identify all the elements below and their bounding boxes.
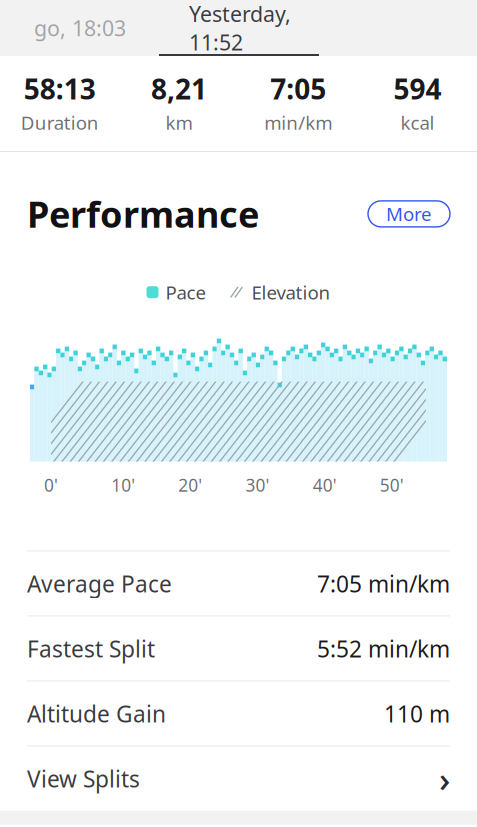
staticText: › [439,756,450,802]
button[interactable]: View Splits [0,747,477,811]
staticText: Duration [21,110,99,135]
staticText: More [386,201,432,226]
staticText: 58:13 [24,70,96,107]
staticText: 7:05 min/km [317,568,450,599]
button[interactable]: go, 18:03 [0,0,160,56]
staticText: Yesterday, 11:52 [189,0,291,56]
staticText: Altitude Gain [27,698,166,729]
staticText: 20' [178,474,202,497]
staticText: 10' [111,474,135,497]
staticText: 8,21 [151,70,207,107]
staticText: View Splits [27,763,140,794]
staticText: Average Pace [27,568,172,599]
staticText: km [165,110,192,135]
staticText: 40' [313,474,337,497]
button[interactable]: Fastest Split [0,617,477,681]
staticText: kcal [400,110,434,135]
staticText: go, 18:03 [34,14,126,42]
staticText: Performance [27,190,259,238]
staticText: 30' [245,474,269,497]
staticText: 50' [380,474,404,497]
staticText: min/km [264,110,332,135]
staticText: Elevation [251,280,330,305]
staticText: Fastest Split [27,633,155,664]
staticText: 594 [393,70,441,107]
button[interactable]: Average Pace [0,552,477,616]
button[interactable]: Yesterday, 11:52 [160,0,320,56]
staticText: 110 m [384,698,450,729]
staticText: 5:52 min/km [317,633,450,664]
staticText: 7:05 [270,70,326,107]
staticText: Pace [165,280,206,305]
staticText: 0' [44,474,58,497]
button[interactable]: Altitude Gain [0,682,477,746]
button[interactable]: More [368,201,450,227]
